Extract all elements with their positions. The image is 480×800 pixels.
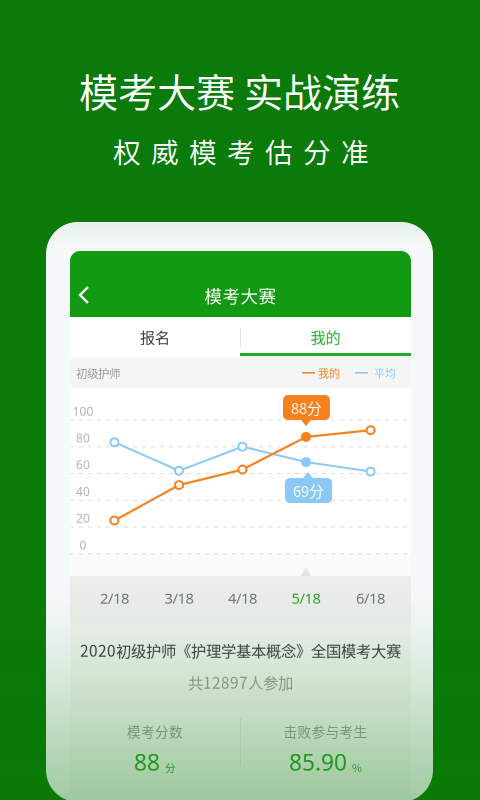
staticText: 分 [165, 760, 176, 775]
staticText: 权威模考估分准 [113, 131, 369, 171]
button[interactable]: 我的 [240, 317, 411, 356]
button[interactable]: 返回 [68, 275, 100, 315]
staticText: 平均 [374, 365, 396, 381]
staticText: 初级护师 [76, 365, 120, 381]
staticText: 2/18 [100, 588, 129, 608]
staticText: 88分 [291, 397, 322, 418]
staticText: 6/18 [356, 588, 385, 608]
staticText: 我的 [310, 325, 340, 347]
staticText: 模考大赛 [204, 282, 276, 308]
staticText: 2020初级护师《护理学基本概念》全国模考大赛 [80, 639, 401, 661]
staticText: 我的 [318, 365, 340, 381]
staticText: 共12897人参加 [188, 671, 293, 693]
staticText: 20 [76, 510, 90, 526]
staticText: 模考分数 [127, 721, 183, 741]
staticText: 击败参与考生 [283, 721, 367, 741]
staticText: 69分 [293, 480, 324, 501]
staticText: 4/18 [228, 588, 257, 608]
staticText: 5/18 [291, 588, 320, 608]
staticText: 报名 [140, 325, 170, 347]
staticText: 100 [72, 403, 93, 419]
staticText: 85.90 [289, 747, 347, 777]
staticText: 88 [134, 747, 160, 777]
button[interactable]: 报名 [70, 317, 240, 356]
staticText: 60 [76, 457, 90, 472]
staticText: 40 [76, 483, 90, 499]
staticText: 3/18 [164, 588, 193, 608]
staticText: 0 [79, 537, 86, 553]
staticText: 80 [76, 430, 90, 446]
staticText: % [352, 760, 362, 775]
staticText: 模考大赛 实战演练 [79, 62, 400, 118]
